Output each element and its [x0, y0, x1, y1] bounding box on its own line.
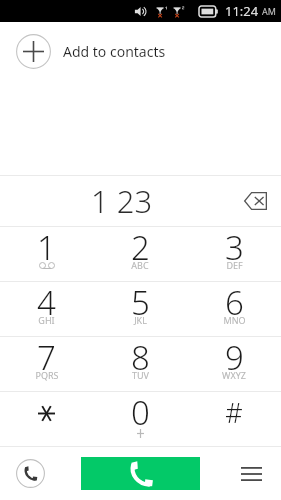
staticText: 6 — [225, 280, 244, 325]
button[interactable]: 5 — [93, 282, 187, 336]
staticText: MNO — [223, 314, 246, 326]
staticText: # — [225, 394, 243, 431]
staticText: 4 — [37, 280, 56, 325]
button[interactable]: 2 — [93, 227, 187, 281]
staticText: 11:24 — [225, 2, 259, 20]
staticText: 2 — [131, 225, 150, 270]
staticText: 3 — [225, 225, 244, 270]
staticText: 9 — [225, 335, 244, 380]
staticText: GHI — [38, 314, 55, 326]
staticText: 1 23 — [91, 180, 153, 222]
button[interactable]: Menu — [221, 447, 281, 500]
staticText: 8 — [131, 335, 150, 380]
staticText: WXYZ — [222, 369, 246, 381]
staticText: AM — [262, 5, 276, 17]
staticText: PQRS — [35, 369, 59, 381]
staticText: TUV — [132, 369, 149, 381]
staticText: 7 — [37, 335, 56, 380]
button[interactable]: 7 — [0, 337, 93, 391]
staticText: 5 — [131, 280, 150, 325]
button[interactable]: Backspace — [229, 176, 281, 226]
button[interactable]: Dialpad — [0, 447, 60, 500]
staticText: DEF — [226, 259, 243, 271]
button[interactable]: Star — [0, 392, 93, 446]
button[interactable]: # — [187, 392, 281, 446]
button[interactable]: 9 — [187, 337, 281, 391]
button[interactable]: 0 — [93, 392, 187, 446]
staticText: Add to contacts — [63, 42, 166, 61]
staticText: 0 — [131, 390, 150, 435]
staticText: ABC — [131, 259, 149, 271]
staticText: JKL — [134, 314, 147, 326]
staticText: 1 — [37, 225, 56, 270]
button[interactable]: 1 — [0, 227, 93, 281]
button[interactable]: 3 — [187, 227, 281, 281]
button[interactable]: Call — [81, 457, 200, 490]
button[interactable]: 6 — [187, 282, 281, 336]
button[interactable]: Add to contacts — [0, 22, 281, 80]
button[interactable]: 8 — [93, 337, 187, 391]
button[interactable]: 4 — [0, 282, 93, 336]
